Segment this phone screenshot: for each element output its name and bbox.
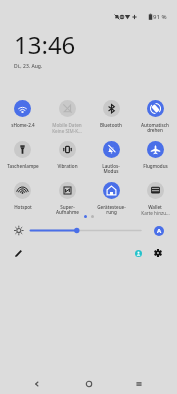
button[interactable]: Einstellungen: [151, 246, 165, 260]
staticText: Lautlos- Modus: [102, 163, 120, 175]
staticText: Flugmodus: [143, 163, 168, 169]
button[interactable]: sHome-2.4: [0, 100, 45, 141]
button[interactable]: Automatische Helligkeit: [154, 226, 164, 236]
staticText: Bluetooth: [100, 122, 122, 128]
staticText: sHome-2.4: [11, 122, 35, 128]
button[interactable]: Bearbeiten: [11, 246, 26, 261]
staticText: 91 %: [153, 13, 167, 21]
staticText: Di., 23. Aug.: [14, 63, 43, 70]
staticText: Keine SIM-K...: [52, 128, 82, 134]
button[interactable]: Letzte Apps: [124, 374, 154, 394]
staticText: Gerätesteue- rung: [97, 204, 126, 216]
staticText: Karte hinzu...: [141, 210, 170, 216]
staticText: Automatisch drehen: [141, 122, 169, 134]
button[interactable]: Wallet: [133, 182, 177, 223]
button[interactable]: Startbildschirm: [74, 374, 104, 394]
button[interactable]: Flugmodus: [133, 141, 177, 182]
button[interactable]: Vibration: [45, 141, 89, 182]
button[interactable]: Lautlos- Modus: [89, 141, 133, 182]
button[interactable]: Automatisch drehen: [133, 100, 177, 141]
button[interactable]: Super- Aufnahme: [45, 182, 89, 223]
staticText: Hotspot: [14, 204, 32, 210]
button[interactable]: Bluetooth: [89, 100, 133, 141]
button[interactable]: Hotspot: [0, 182, 45, 223]
button[interactable]: Mobile Daten: [45, 100, 89, 141]
staticText: Mobile Daten: [52, 122, 82, 128]
button[interactable]: Zurück: [22, 374, 52, 394]
staticText: A: [157, 227, 162, 235]
button[interactable]: Gerätesteue- rung: [89, 182, 133, 223]
staticText: Vibration: [57, 163, 78, 169]
staticText: Super- Aufnahme: [56, 204, 79, 216]
staticText: 13:46: [14, 28, 76, 61]
staticText: Wallet: [148, 204, 162, 210]
button[interactable]: Taschenlampe: [0, 141, 45, 182]
staticText: Taschenlampe: [7, 163, 39, 169]
button[interactable]: Nutzer: [131, 246, 145, 260]
